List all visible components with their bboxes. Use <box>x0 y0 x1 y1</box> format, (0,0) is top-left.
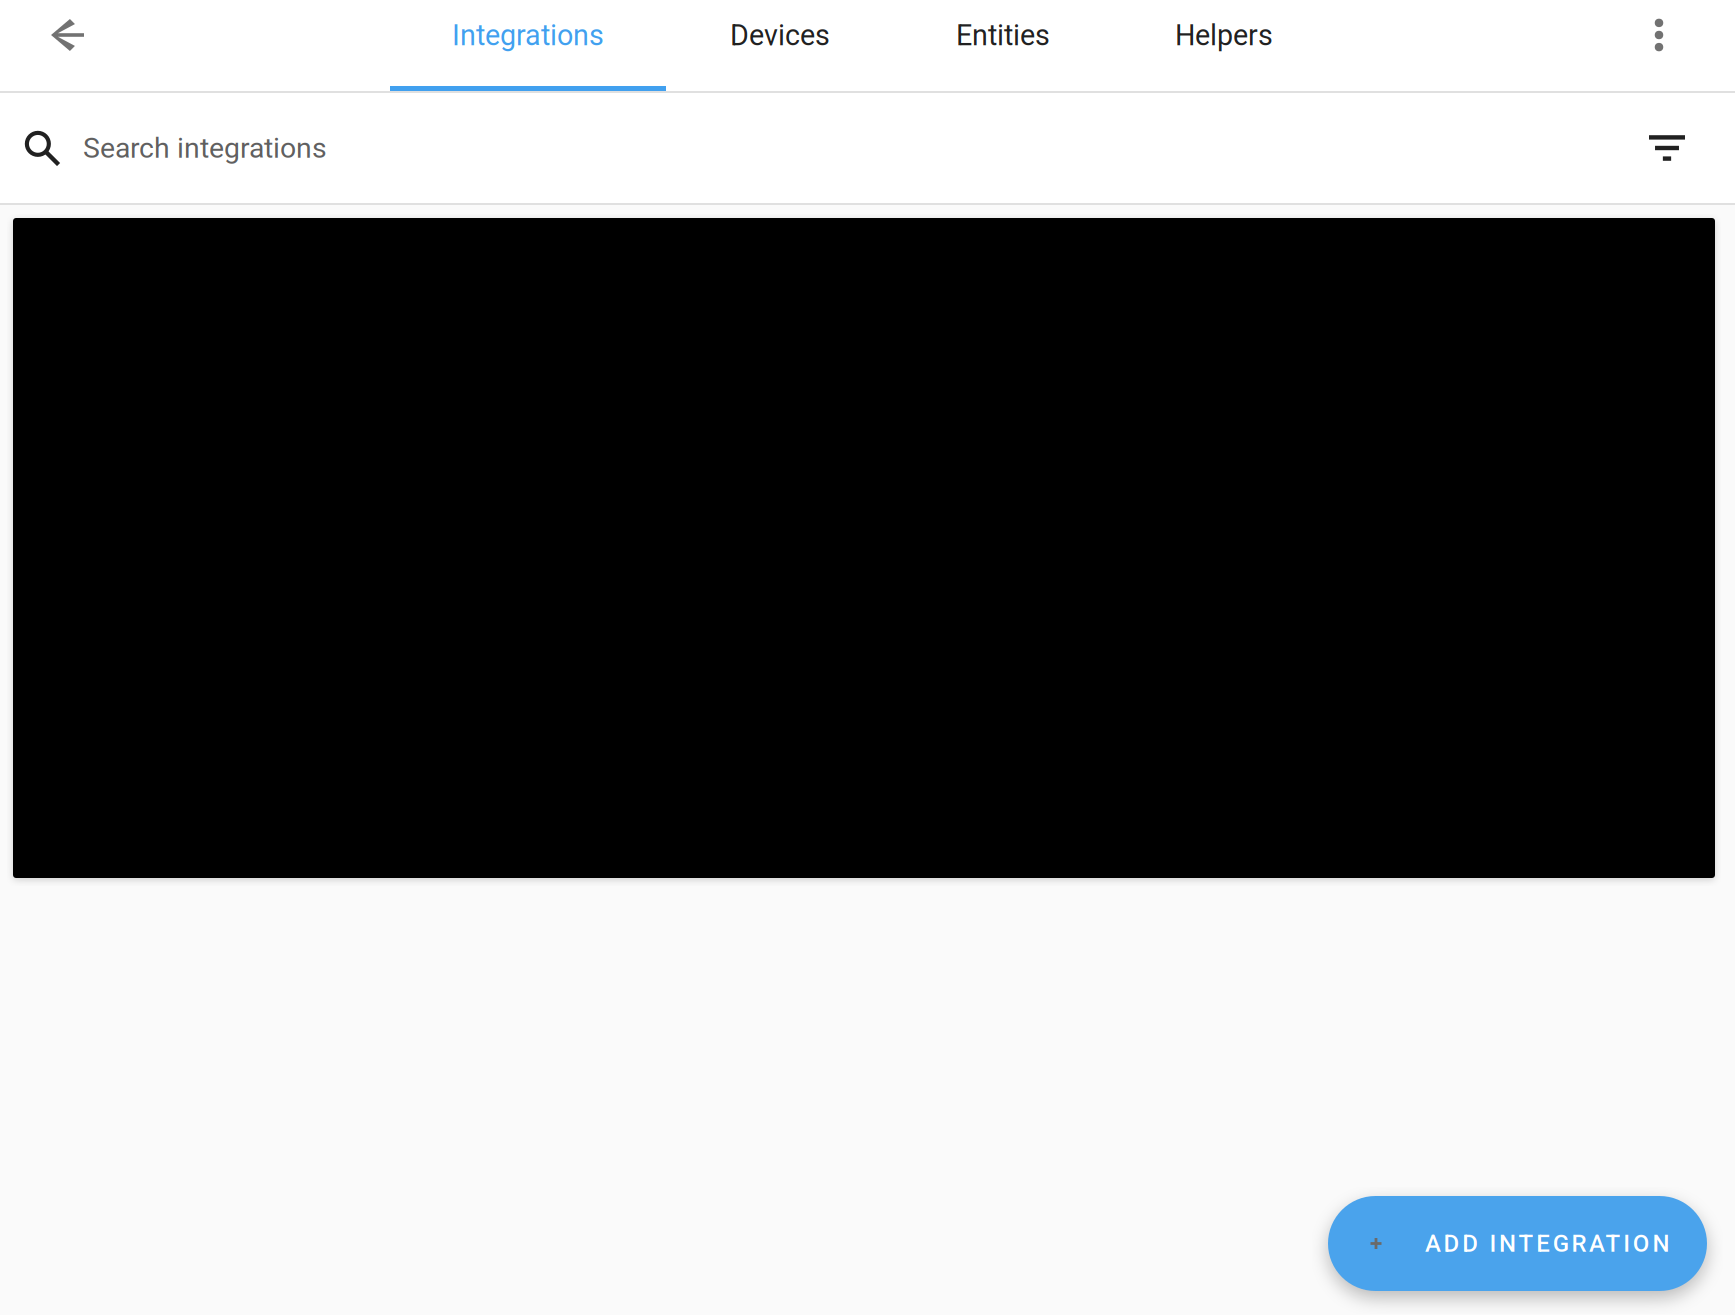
staticText: Devices <box>730 19 830 52</box>
staticText: Integrations <box>452 19 604 52</box>
button[interactable]: Entities <box>894 0 1112 91</box>
button[interactable]: Back <box>0 0 134 91</box>
button[interactable]: More options <box>1583 0 1735 91</box>
staticText: Helpers <box>1175 19 1273 52</box>
button[interactable]: Filter <box>1631 112 1703 184</box>
staticText: Search integrations <box>83 131 327 165</box>
button[interactable]: Search integrations <box>24 93 1631 203</box>
staticText: ADD INTEGRATION <box>1425 1229 1669 1257</box>
button[interactable]: Devices <box>666 0 894 91</box>
button[interactable]: Helpers <box>1112 0 1336 91</box>
button[interactable]: ADD INTEGRATION <box>1328 1196 1707 1291</box>
button[interactable]: Integrations <box>390 0 666 91</box>
staticText: Entities <box>956 19 1050 52</box>
